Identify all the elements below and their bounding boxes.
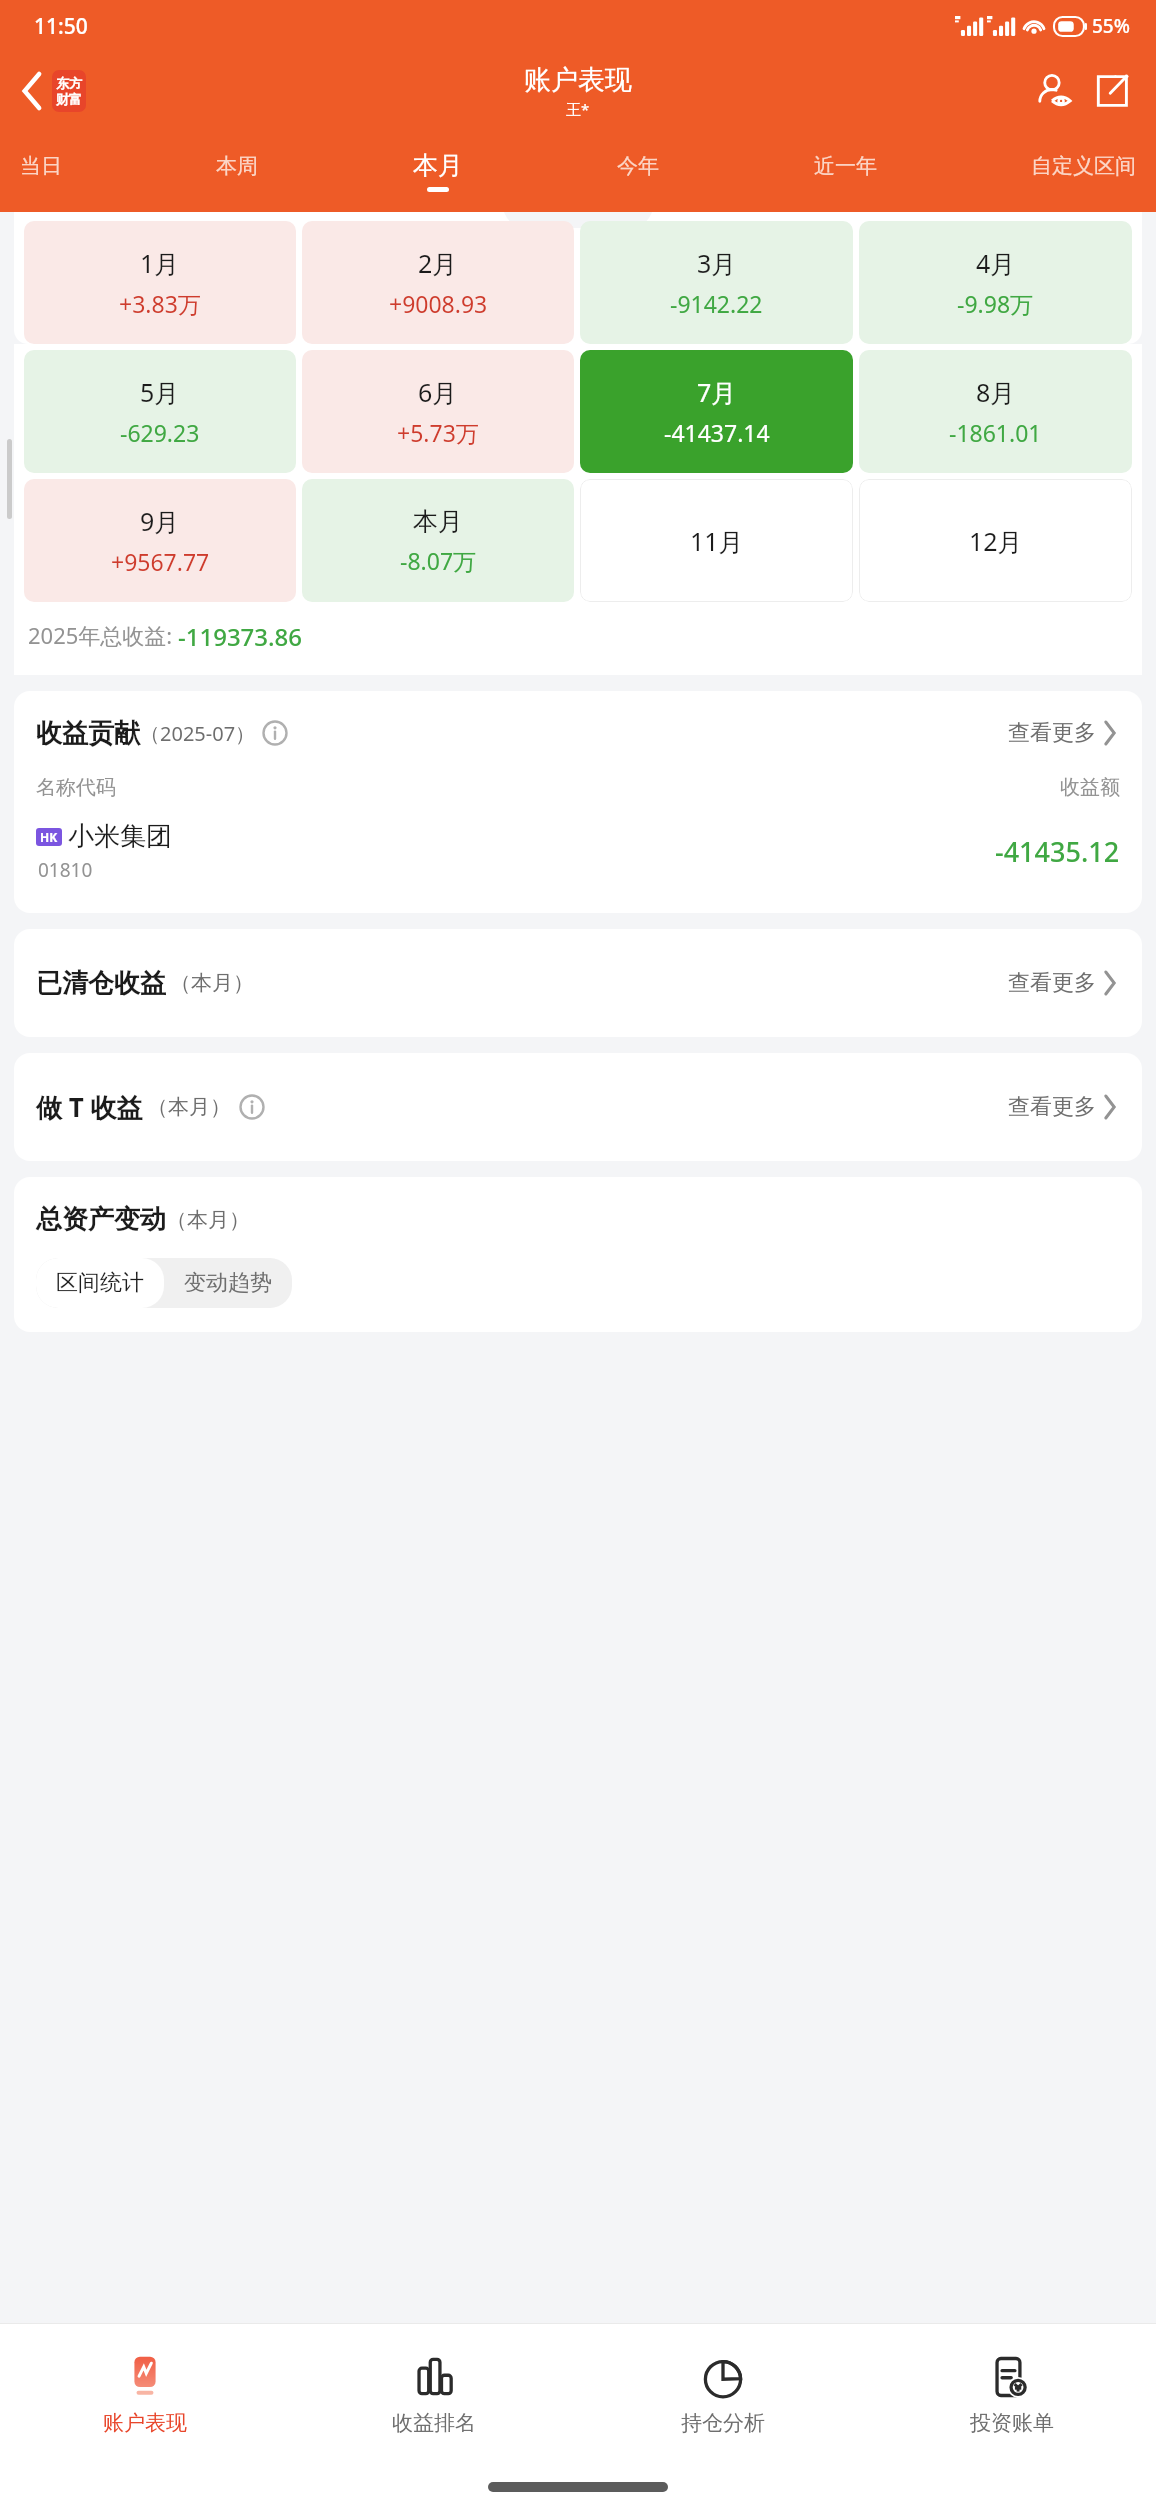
staticText: 王*: [566, 99, 590, 119]
staticText: +3.83万: [119, 288, 201, 319]
staticText: -9.98万: [957, 288, 1034, 319]
button[interactable]: 本周: [210, 153, 264, 190]
button[interactable]: 1月: [24, 221, 296, 344]
button[interactable]: 5月: [24, 350, 296, 473]
button[interactable]: 查看更多: [1004, 715, 1120, 751]
button[interactable]: 收益排名: [289, 2324, 578, 2464]
button[interactable]: 查看更多: [1004, 965, 1120, 1001]
staticText: 持仓分析: [681, 2410, 765, 2436]
staticText: 2月: [418, 246, 458, 280]
staticText: 已清仓收益: [36, 967, 166, 1000]
button[interactable]: 投资账单: [867, 2324, 1156, 2464]
staticText: （本月）: [166, 1207, 250, 1233]
staticText: -119373.86: [178, 620, 303, 653]
staticText: 变动趋势: [184, 1269, 272, 1297]
staticText: 3月: [697, 246, 737, 280]
button[interactable]: 账户: [1032, 68, 1078, 114]
button[interactable]: 8月: [859, 350, 1132, 473]
button[interactable]: 6月: [302, 350, 574, 473]
staticText: 本月: [413, 506, 463, 537]
staticText: 投资账单: [970, 2410, 1054, 2436]
staticText: 当日: [20, 153, 62, 179]
button[interactable]: 持仓分析: [578, 2324, 867, 2464]
button[interactable]: 7月: [580, 350, 853, 473]
staticText: （本月）: [170, 970, 254, 996]
staticText: 2025年总收益:: [28, 620, 178, 650]
staticText: 东方: [56, 75, 82, 91]
staticText: +9008.93: [389, 288, 488, 319]
staticText: -41435.12: [995, 833, 1120, 870]
staticText: 名称代码: [36, 775, 116, 800]
button[interactable]: 近一年: [808, 153, 883, 190]
staticText: 收益贡献: [36, 717, 140, 750]
staticText: 查看更多: [1008, 969, 1096, 997]
button[interactable]: 12月: [859, 479, 1132, 602]
button[interactable]: 自定义区间: [1025, 153, 1142, 190]
staticText: 查看更多: [1008, 1093, 1096, 1121]
staticText: 01810: [38, 857, 93, 883]
staticText: 本周: [216, 153, 258, 179]
staticText: 11:50: [34, 12, 88, 41]
button[interactable]: 区间统计: [36, 1258, 164, 1308]
button[interactable]: 查看更多: [1004, 1089, 1120, 1125]
staticText: 小米集团: [68, 820, 172, 853]
button[interactable]: 做 T 收益: [14, 1053, 1142, 1161]
staticText: 7月: [697, 375, 737, 409]
button[interactable]: 11月: [580, 479, 853, 602]
staticText: 账户表现: [103, 2410, 187, 2436]
staticText: 5月: [140, 375, 180, 409]
staticText: -629.23: [120, 417, 200, 448]
button[interactable]: 4月: [859, 221, 1132, 344]
staticText: 11月: [690, 524, 744, 558]
staticText: 1月: [140, 246, 180, 280]
button[interactable]: 返回: [18, 64, 90, 118]
staticText: -1861.01: [949, 417, 1042, 448]
button[interactable]: 9月: [24, 479, 296, 602]
staticText: 近一年: [814, 153, 877, 179]
staticText: 9月: [140, 504, 180, 538]
staticText: -8.07万: [400, 545, 477, 576]
staticText: （2025-07）: [140, 720, 256, 747]
button[interactable]: 已清仓收益: [14, 929, 1142, 1037]
staticText: 4月: [976, 246, 1016, 280]
staticText: （本月）: [147, 1094, 231, 1120]
staticText: 查看更多: [1008, 719, 1096, 747]
staticText: 今年: [617, 153, 659, 179]
button[interactable]: 2月: [302, 221, 574, 344]
staticText: 55%: [1092, 13, 1130, 39]
staticText: 6月: [418, 375, 458, 409]
button[interactable]: 分享: [1090, 69, 1134, 113]
staticText: 账户表现: [524, 63, 632, 97]
staticText: 做 T 收益: [36, 1089, 143, 1125]
button[interactable]: 账户表现: [0, 2324, 289, 2464]
button[interactable]: 今年: [611, 153, 665, 190]
staticText: +9567.77: [111, 546, 210, 577]
staticText: -9142.22: [670, 288, 763, 319]
staticText: 收益额: [1060, 775, 1120, 800]
staticText: 总资产变动: [36, 1203, 166, 1236]
button[interactable]: HK: [14, 800, 1142, 903]
staticText: 12月: [969, 524, 1023, 558]
button[interactable]: 当日: [14, 153, 68, 190]
staticText: 8月: [976, 375, 1016, 409]
button[interactable]: 本月: [407, 150, 469, 192]
button[interactable]: 变动趋势: [164, 1258, 292, 1308]
button[interactable]: 3月: [580, 221, 853, 344]
staticText: 收益排名: [392, 2410, 476, 2436]
staticText: 财富: [56, 91, 82, 107]
staticText: HK: [40, 829, 58, 845]
staticText: -41437.14: [664, 417, 770, 448]
staticText: +5.73万: [397, 417, 479, 448]
button[interactable]: 本月: [302, 479, 574, 602]
staticText: 区间统计: [56, 1269, 144, 1297]
staticText: 自定义区间: [1031, 153, 1136, 179]
staticText: 本月: [413, 150, 463, 181]
